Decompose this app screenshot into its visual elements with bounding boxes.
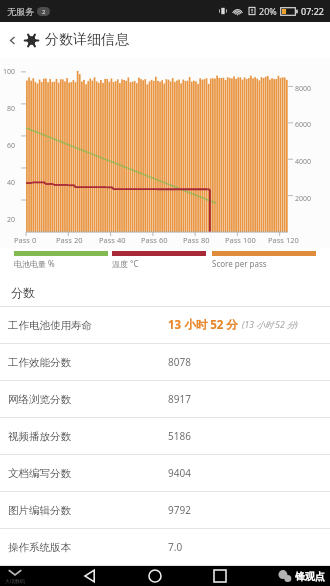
staticText: 分数详细信息	[45, 31, 129, 49]
staticText: 工作效能分数	[8, 356, 168, 369]
staticText: 2000	[295, 194, 312, 204]
staticText: 8000	[295, 84, 312, 94]
button[interactable]: 图片编辑分数	[0, 492, 330, 528]
staticText: 5186	[168, 429, 191, 443]
staticText: Pass 20	[56, 235, 83, 245]
staticText: 20	[7, 215, 16, 225]
staticText: 网络浏览分数	[8, 393, 168, 406]
button[interactable]: Back	[0, 28, 24, 52]
staticText: 80	[7, 104, 16, 114]
button[interactable]: Recent apps	[201, 566, 239, 586]
staticText: 视频播放分数	[8, 430, 168, 443]
staticText: 无服务	[7, 6, 34, 17]
button[interactable]: 网络浏览分数	[0, 381, 330, 417]
staticText: 40	[7, 178, 16, 188]
staticText: Pass 40	[99, 235, 126, 245]
staticText: 大话数码	[5, 578, 25, 584]
staticText: 4000	[295, 157, 312, 167]
staticText: 6000	[295, 120, 312, 130]
staticText: Pass 60	[141, 235, 168, 245]
staticText: Pass 100	[225, 235, 256, 245]
staticText: Pass 80	[183, 235, 210, 245]
button[interactable]: 文档编写分数	[0, 455, 330, 491]
staticText: 20%	[259, 5, 277, 17]
staticText: 分数	[11, 285, 35, 300]
staticText: 工作电池使用寿命	[8, 319, 168, 332]
staticText: 2	[42, 8, 46, 16]
staticText: 07:22	[301, 5, 325, 17]
staticText: 13 小时 52 分	[168, 317, 238, 333]
button[interactable]: 工作效能分数	[0, 344, 330, 380]
staticText: 文档编写分数	[8, 467, 168, 480]
staticText: 温度 °C	[112, 258, 139, 269]
staticText: 8078	[168, 355, 191, 369]
staticText: 100	[3, 67, 16, 77]
button[interactable]: 视频播放分数	[0, 418, 330, 454]
button[interactable]: Back	[71, 566, 109, 586]
button[interactable]: 工作电池使用寿命	[0, 307, 330, 343]
staticText: 60	[7, 141, 16, 151]
staticText: 电池电量 %	[14, 258, 55, 269]
staticText: 8917	[168, 392, 191, 406]
staticText: Pass 0	[14, 235, 37, 245]
staticText: Score per pass	[212, 258, 267, 269]
staticText: 操作系统版本	[8, 541, 168, 554]
staticText: 9792	[168, 503, 191, 517]
staticText: (13 小时 52 分)	[242, 319, 298, 331]
button[interactable]: 操作系统版本	[0, 529, 330, 565]
staticText: Pass 120	[268, 235, 299, 245]
staticText: 7.0	[168, 540, 183, 554]
staticText: 锋观点	[295, 570, 325, 583]
staticText: 9404	[168, 466, 191, 480]
button[interactable]: Home	[136, 566, 174, 586]
staticText: 图片编辑分数	[8, 504, 168, 517]
